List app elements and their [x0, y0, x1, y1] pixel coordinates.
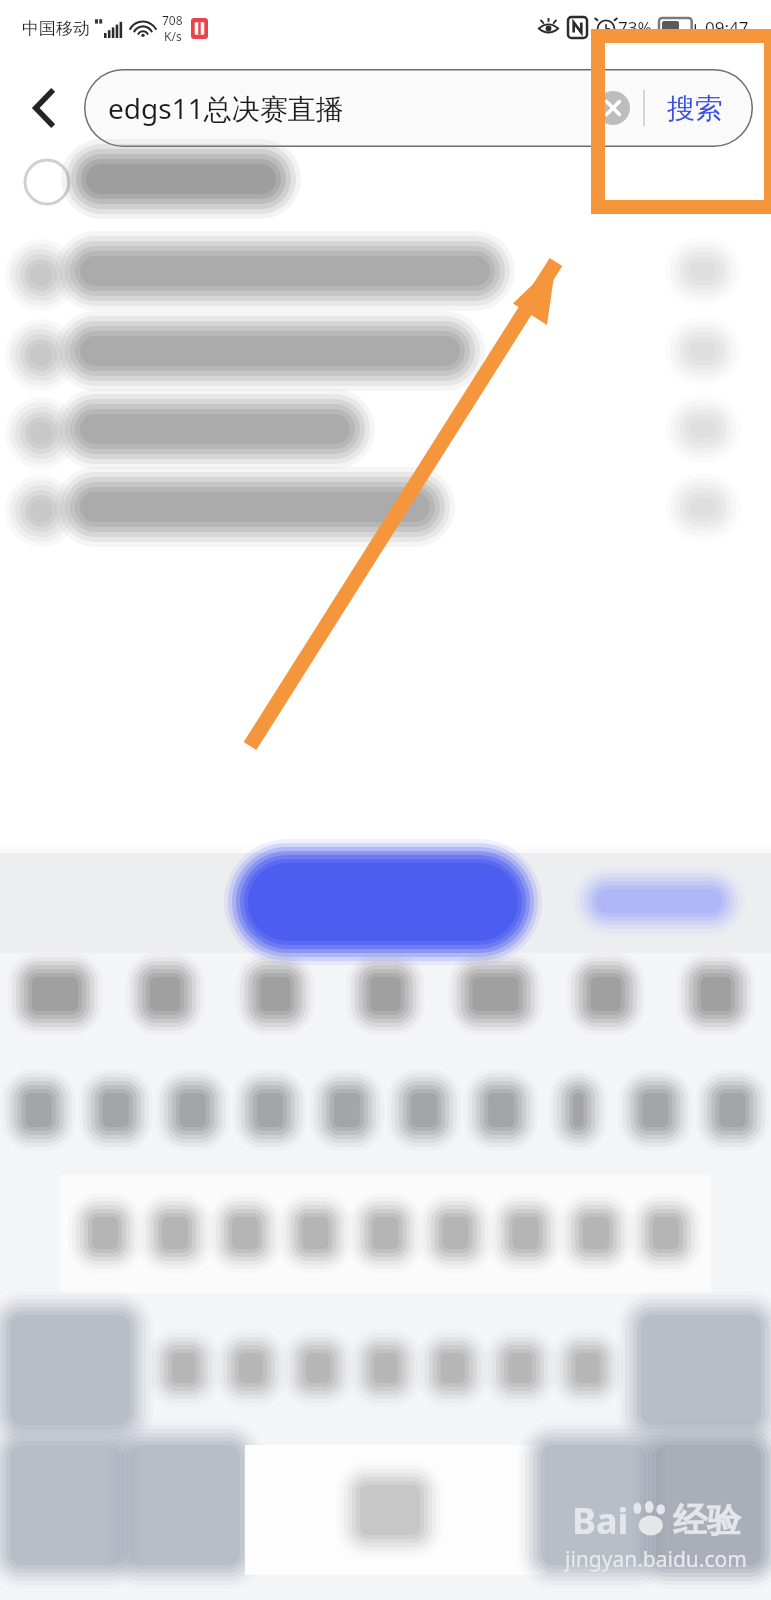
staticText: jingyan.baidu.com: [565, 1545, 747, 1574]
staticText: 搜索: [667, 91, 723, 126]
button[interactable]: 搜索: [645, 91, 745, 126]
staticText: 708: [162, 12, 183, 28]
staticText: edgs11总决赛直播: [108, 89, 591, 127]
button[interactable]: Back: [18, 82, 70, 134]
staticText: 73%: [618, 16, 652, 39]
staticText: 中国移动: [22, 18, 90, 39]
staticText: 经验: [673, 1499, 741, 1542]
staticText: K/s: [164, 28, 182, 44]
staticText: 09:47: [705, 16, 749, 39]
staticText: Bai: [572, 1496, 629, 1545]
button[interactable]: Clear: [591, 86, 635, 130]
